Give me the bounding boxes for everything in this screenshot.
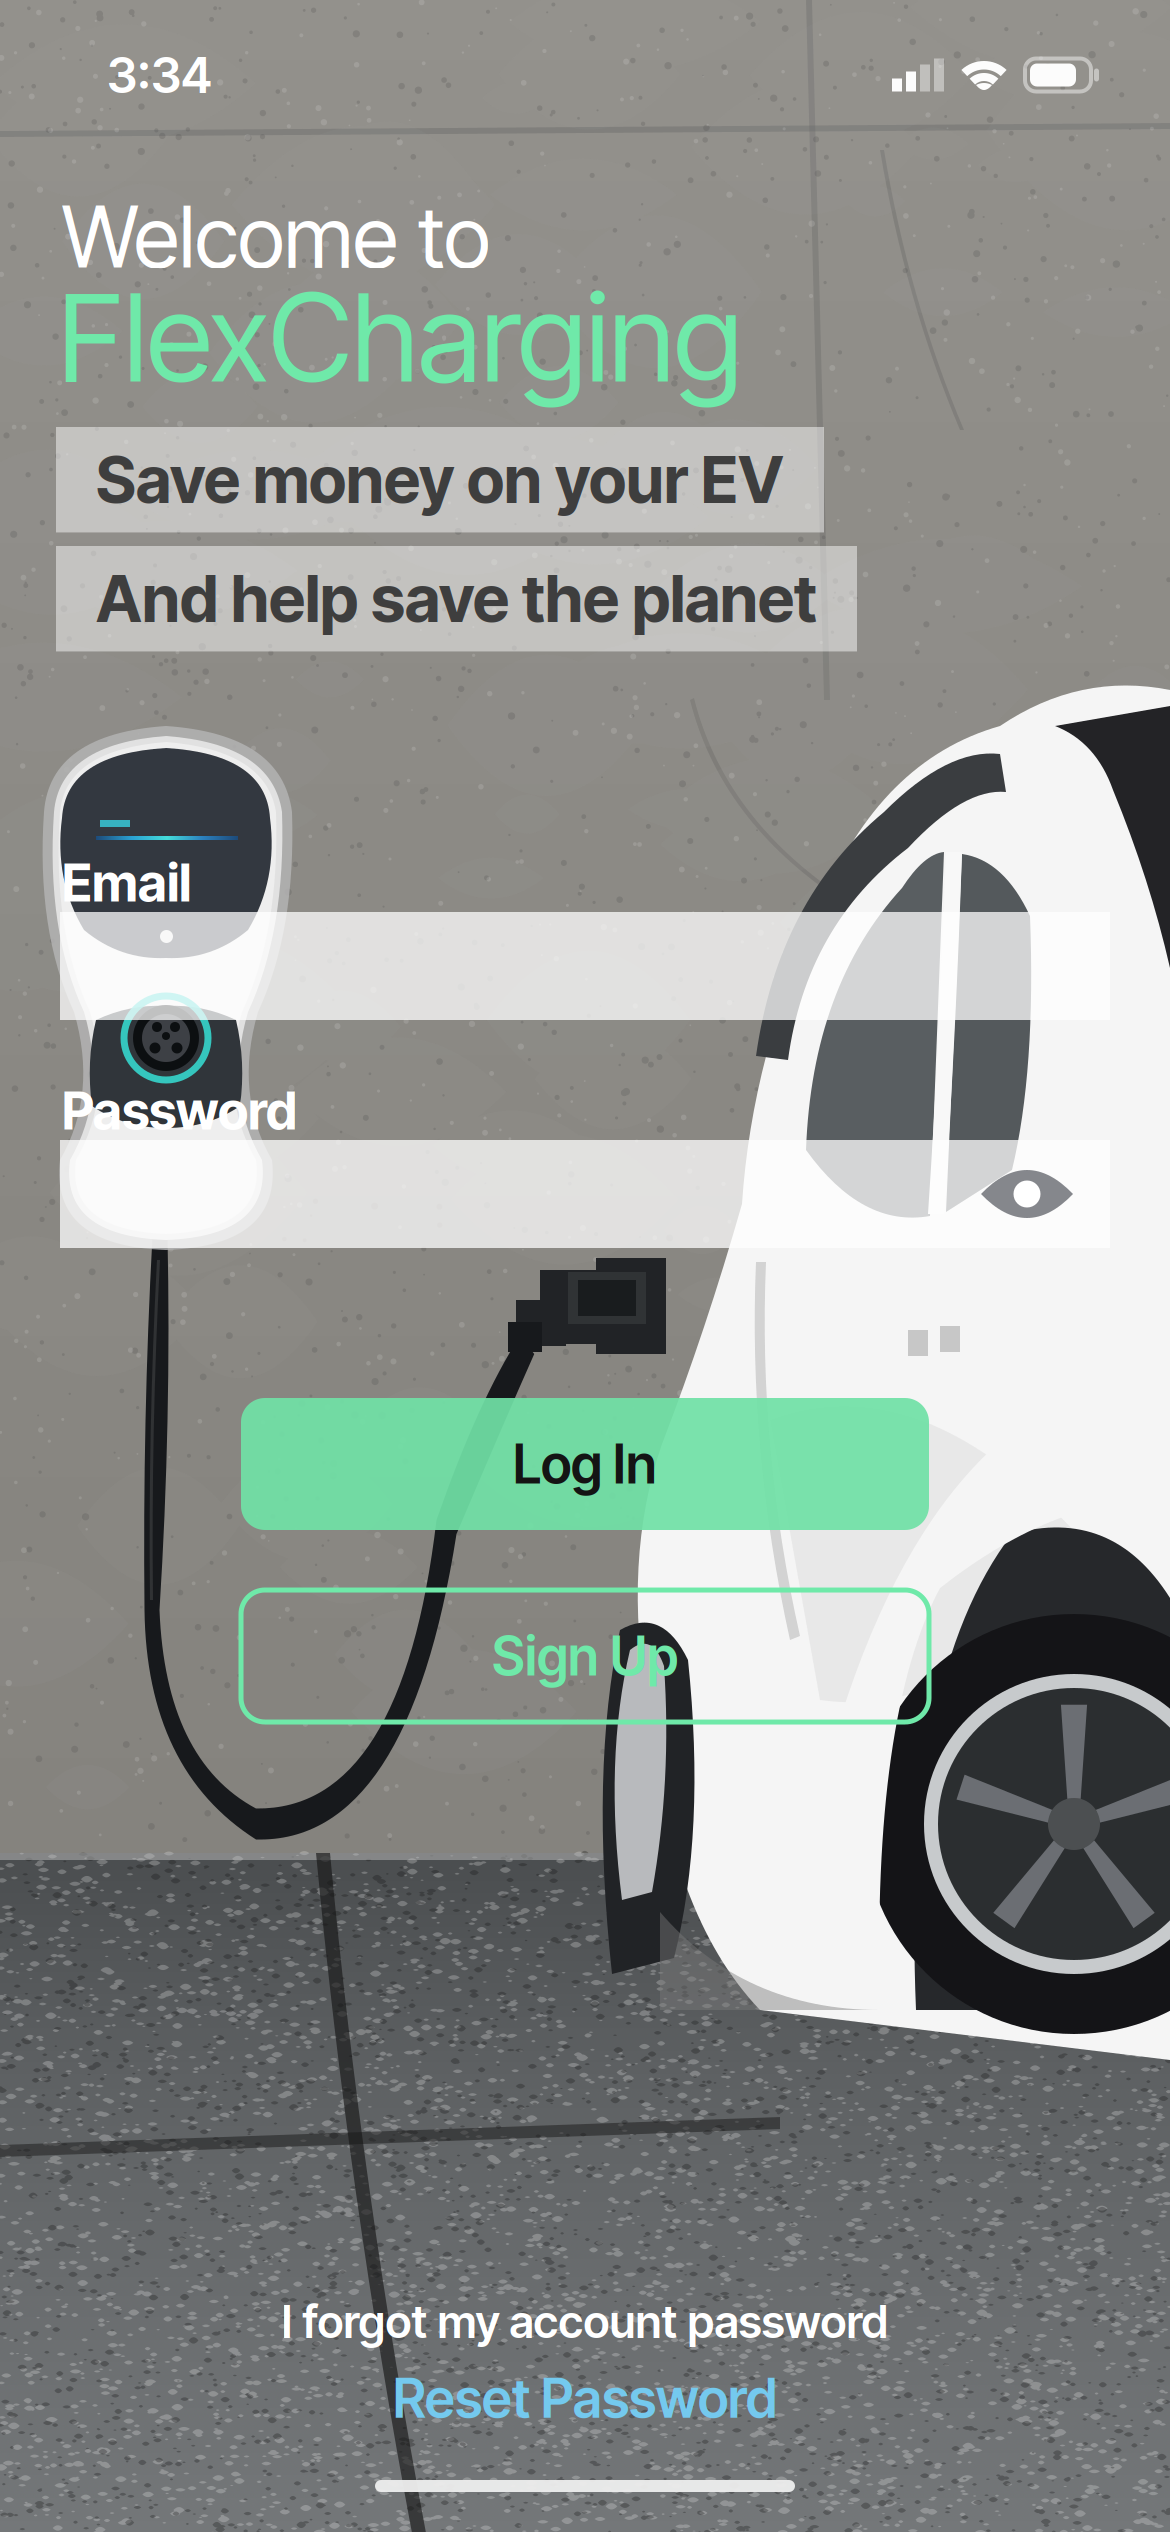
staticText: Welcome to [62, 186, 490, 288]
button[interactable]: Password [60, 1140, 1110, 1248]
button[interactable]: Email [60, 912, 1110, 1020]
staticText: And help save the planet [96, 560, 817, 637]
button[interactable]: Log In [241, 1398, 929, 1530]
staticText: Sign Up [492, 1624, 678, 1688]
staticText: FlexCharging [58, 264, 742, 411]
staticText: Save money on your EV [96, 441, 784, 518]
staticText: Log In [513, 1432, 657, 1496]
staticText: Password [62, 1079, 297, 1142]
staticText: Reset Password [393, 2366, 777, 2430]
staticText: 3:34 [107, 45, 212, 105]
staticText: I forgot my account password [281, 2294, 888, 2349]
button[interactable]: Reset Password [0, 2366, 1170, 2430]
staticText: Email [62, 851, 191, 914]
button[interactable]: Sign Up [241, 1590, 929, 1722]
button[interactable]: Show password [980, 1166, 1110, 1222]
